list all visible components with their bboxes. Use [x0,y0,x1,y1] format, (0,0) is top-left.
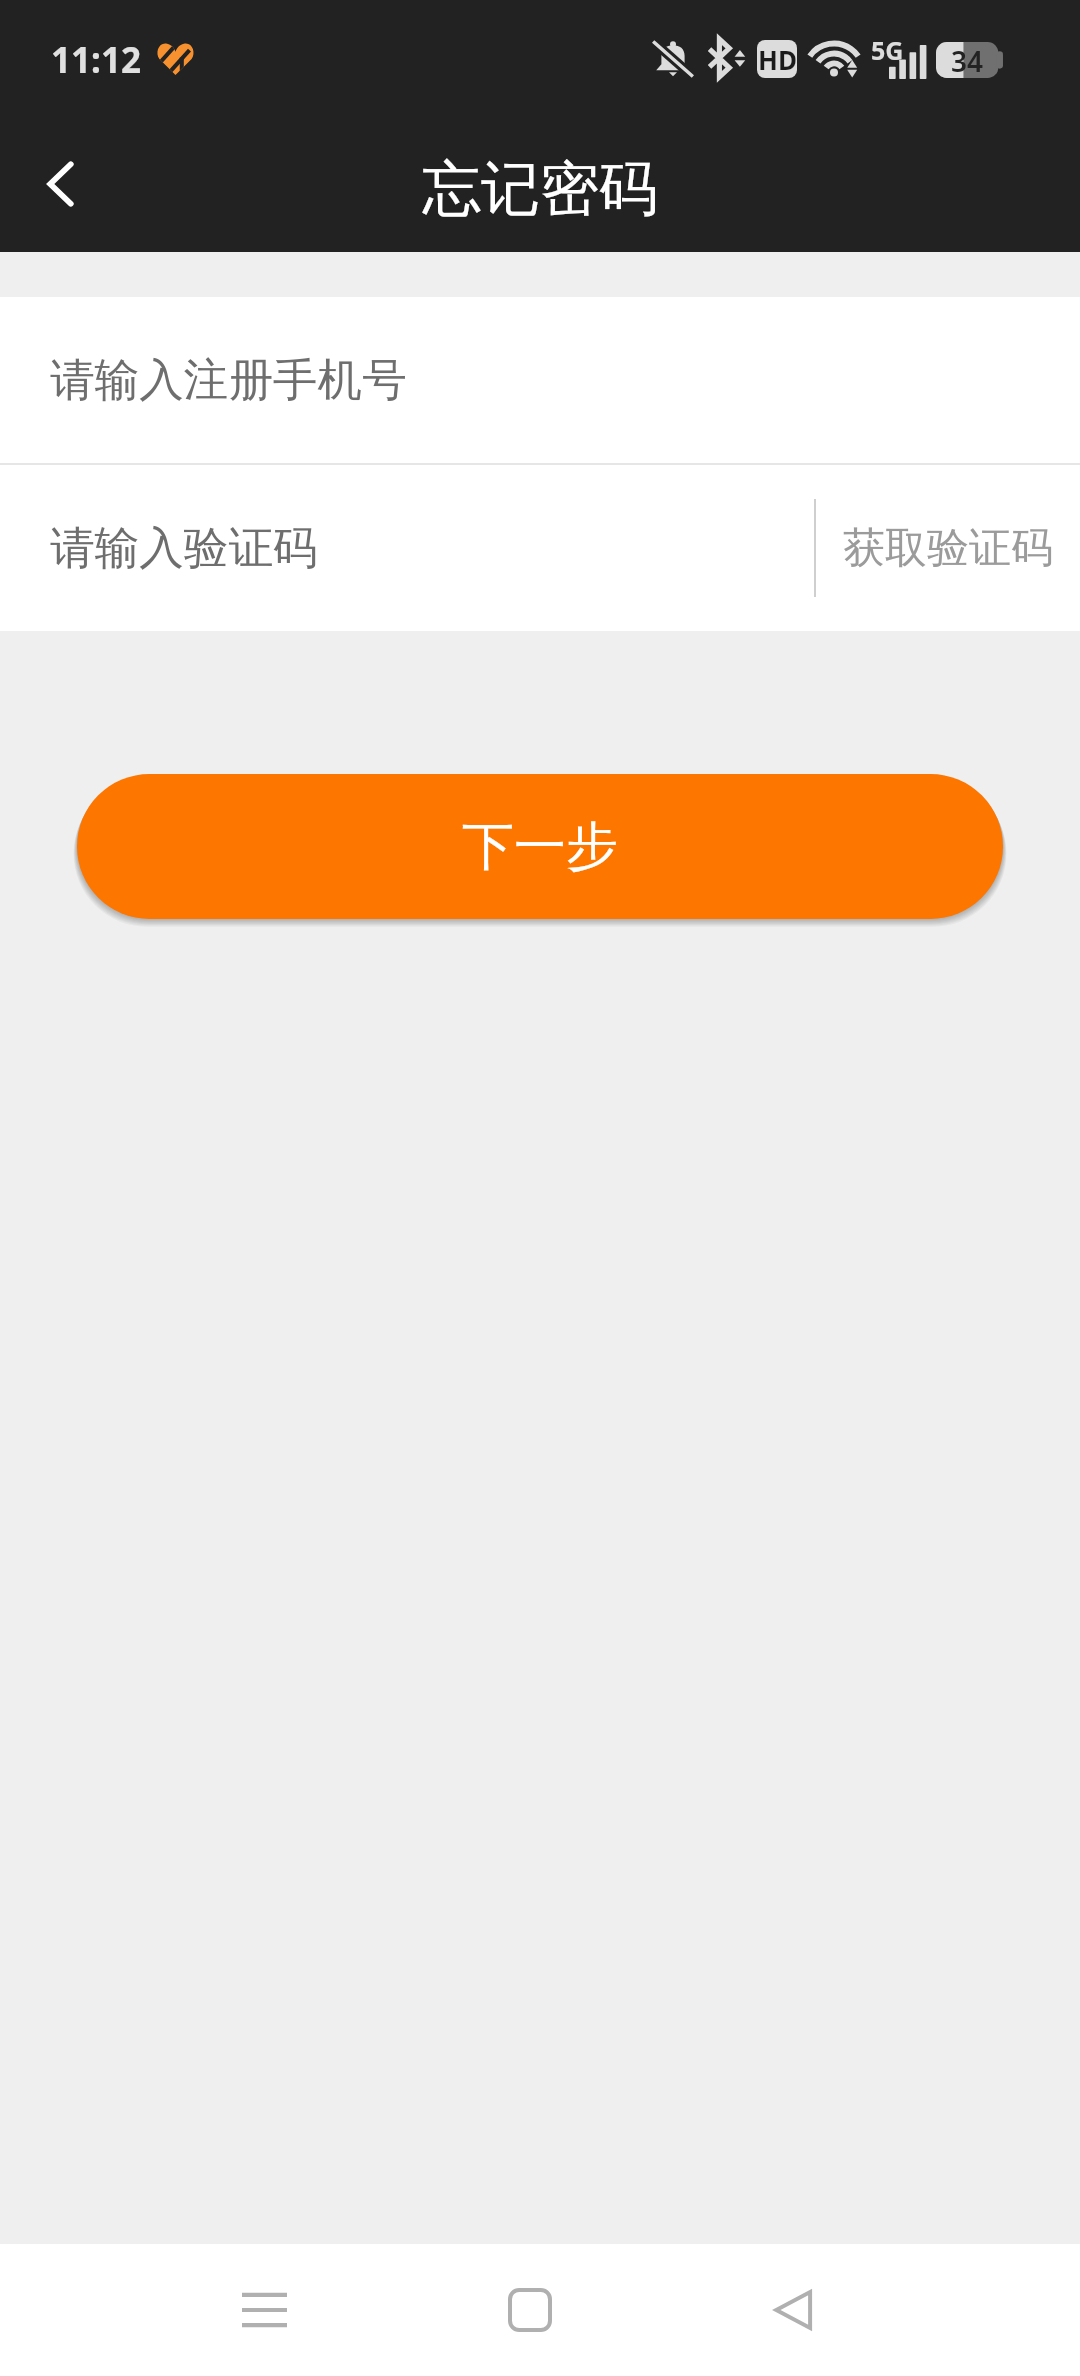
staticText: HD [758,42,797,77]
staticText: 忘记密码 [422,152,658,226]
button[interactable]: 下一步 [77,774,1003,919]
button[interactable]: Home [470,2250,590,2370]
staticText: 请输入注册手机号 [50,352,407,408]
button[interactable]: Recent apps [204,2250,324,2370]
button[interactable]: Back [4,110,116,252]
staticText: 34 [951,42,984,78]
staticText: 获取验证码 [843,522,1053,575]
staticText: 11:12 [51,36,141,84]
button[interactable]: 请输入注册手机号 [0,297,1080,463]
staticText: 下一步 [462,814,618,880]
staticText: 5G [871,33,904,67]
button[interactable]: Back [733,2250,853,2370]
staticText: 请输入验证码 [50,520,318,576]
button[interactable]: 获取验证码 [815,465,1080,631]
button[interactable]: 请输入验证码 [0,465,815,631]
